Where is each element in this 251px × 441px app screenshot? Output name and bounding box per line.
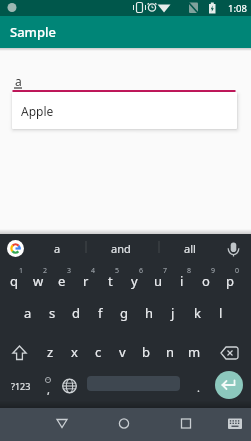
button[interactable] <box>226 412 246 432</box>
staticText: a <box>24 304 32 322</box>
staticText: b <box>142 343 150 361</box>
staticText: c <box>95 343 102 361</box>
button[interactable]: j <box>161 296 185 330</box>
staticText: g <box>120 304 128 322</box>
staticText: e <box>58 272 66 290</box>
staticText: y <box>131 272 138 290</box>
button[interactable]: d <box>64 296 88 330</box>
button[interactable]: . <box>190 379 206 395</box>
button[interactable] <box>215 371 243 399</box>
button[interactable]: h <box>137 296 161 330</box>
button[interactable]: a <box>11 73 25 89</box>
button[interactable]: g <box>112 296 136 330</box>
staticText: 8 <box>187 266 192 276</box>
button[interactable]: all <box>162 235 218 261</box>
staticText: 2 <box>43 266 48 276</box>
button[interactable]: k <box>185 296 209 330</box>
button[interactable]: y <box>122 264 146 298</box>
staticText: h <box>145 304 154 322</box>
staticText: w <box>33 272 44 290</box>
button[interactable] <box>6 338 34 368</box>
staticText: 5 <box>115 266 120 276</box>
staticText: j <box>171 304 175 322</box>
staticText: x <box>71 343 78 361</box>
staticText: k <box>194 304 201 322</box>
staticText: u <box>154 272 163 290</box>
staticText: i <box>180 272 184 290</box>
staticText: all <box>184 241 196 256</box>
staticText: 9 <box>211 266 216 276</box>
staticText: v <box>119 343 126 361</box>
button[interactable]: l <box>209 296 233 330</box>
button[interactable]: u <box>146 264 170 298</box>
button[interactable] <box>7 240 24 257</box>
button[interactable]: q <box>2 264 26 298</box>
button[interactable]: Apple <box>12 92 237 129</box>
staticText: Apple <box>21 103 54 119</box>
button[interactable]: a <box>35 235 79 261</box>
button[interactable]: ?123 <box>4 369 38 403</box>
staticText: Sample <box>10 23 56 41</box>
button[interactable]: v <box>110 335 134 369</box>
staticText: a <box>54 241 61 256</box>
button[interactable]: Sample <box>10 16 130 48</box>
button[interactable] <box>172 410 200 438</box>
button[interactable]: o <box>194 264 218 298</box>
staticText: r <box>83 272 89 290</box>
staticText: l <box>219 304 223 322</box>
staticText: a <box>15 73 22 89</box>
staticText: f <box>98 304 103 322</box>
button[interactable]: i <box>170 264 194 298</box>
button[interactable]: t <box>98 264 122 298</box>
button[interactable] <box>215 338 245 368</box>
button[interactable]: f <box>88 296 112 330</box>
button[interactable] <box>56 372 84 400</box>
staticText: ?123 <box>11 380 31 392</box>
button[interactable] <box>110 410 138 438</box>
button[interactable]: n <box>158 335 182 369</box>
button[interactable]: e <box>50 264 74 298</box>
button[interactable]: and <box>93 235 149 261</box>
staticText: 1:08 <box>228 2 247 15</box>
button[interactable]: r <box>74 264 98 298</box>
button[interactable] <box>36 370 60 402</box>
button[interactable]: c <box>86 335 110 369</box>
staticText: t <box>108 272 113 290</box>
staticText: p <box>226 272 234 290</box>
staticText: q <box>10 272 18 290</box>
staticText: 7 <box>163 266 168 276</box>
button[interactable]: m <box>182 335 206 369</box>
staticText: 3 <box>67 266 72 276</box>
button[interactable]: x <box>62 335 86 369</box>
staticText: 6 <box>139 266 144 276</box>
staticText: 4 <box>91 266 96 276</box>
button[interactable]: z <box>38 335 62 369</box>
staticText: . <box>197 380 200 395</box>
staticText: and <box>111 241 131 256</box>
button[interactable]: w <box>26 264 50 298</box>
button[interactable]: b <box>134 335 158 369</box>
staticText: s <box>49 304 56 322</box>
staticText: z <box>47 343 54 361</box>
staticText: n <box>166 343 175 361</box>
staticText: d <box>72 304 80 322</box>
button[interactable]: a <box>16 296 40 330</box>
staticText: , <box>47 382 50 396</box>
staticText: 0 <box>235 266 240 276</box>
staticText: o <box>202 272 210 290</box>
button[interactable] <box>48 410 76 438</box>
staticText: 1 <box>19 266 24 276</box>
button[interactable]: s <box>40 296 64 330</box>
button[interactable]: p <box>218 264 242 298</box>
staticText: m <box>188 343 201 361</box>
